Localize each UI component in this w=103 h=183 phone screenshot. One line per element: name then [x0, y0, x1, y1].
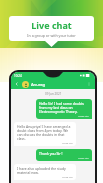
- button[interactable]: Hello Sir! I had some doubts from my las…: [36, 99, 92, 119]
- staticText: 10:27 AM: [78, 156, 89, 159]
- staticText: Hello Anupriya! I have arranged a doubt …: [17, 124, 73, 141]
- staticText: Thank you Sir !: [39, 151, 63, 156]
- staticText: 10:24 AM: [78, 114, 89, 117]
- button[interactable]: Hello Anupriya! I have arranged a doubt …: [14, 122, 76, 146]
- staticText: 09 Jun 2021: [45, 92, 62, 96]
- staticText: 10:28 AM: [62, 175, 73, 178]
- button[interactable]: I have also uploaded the study material …: [14, 164, 76, 180]
- staticText: In a group or with your tutor: [27, 33, 76, 38]
- button[interactable]: Thank you Sir !: [36, 149, 92, 161]
- staticText: 10:26 AM: [62, 141, 73, 144]
- staticText: Anurag: [31, 82, 46, 87]
- button[interactable]: Live chat: [9, 16, 94, 41]
- button[interactable]: More options: [86, 81, 92, 87]
- staticText: 10:24: [14, 74, 22, 78]
- staticText: Hello Sir! I had some doubts from my las…: [39, 101, 89, 114]
- button[interactable]: Back: [14, 81, 20, 87]
- staticText: Live chat: [31, 19, 72, 31]
- staticText: I have also uploaded the study material …: [17, 166, 73, 175]
